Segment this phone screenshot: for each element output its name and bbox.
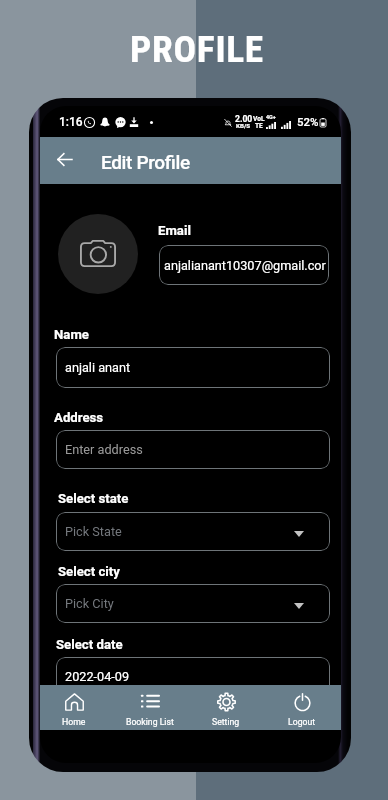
staticText: PROFILE xyxy=(130,27,264,71)
button[interactable]: Setting xyxy=(188,685,264,730)
staticText: Select date xyxy=(56,637,123,652)
staticText: Name xyxy=(54,327,89,342)
staticText: Edit Profile xyxy=(101,151,190,173)
staticText: Enter address xyxy=(65,442,143,457)
staticText: 4G+ xyxy=(266,114,276,120)
staticText: VoL xyxy=(253,115,265,123)
staticText: Pick City xyxy=(65,596,114,611)
staticText: Select city xyxy=(58,564,120,579)
staticText: Address xyxy=(54,410,104,425)
button[interactable]: Pick City xyxy=(56,584,330,623)
staticText: 2022-04-09 xyxy=(65,669,130,684)
button[interactable]: anjalianant10307@gmail.cor xyxy=(159,245,329,285)
button[interactable]: Enter address xyxy=(56,430,330,469)
staticText: 2.00 xyxy=(235,114,253,124)
staticText: Logout xyxy=(288,717,316,727)
staticText: 1:16 xyxy=(59,115,83,129)
button[interactable]: Pick State xyxy=(56,512,330,551)
button[interactable]: anjali anant xyxy=(56,347,330,388)
staticText: Setting xyxy=(212,717,240,727)
button[interactable]: Home xyxy=(40,685,112,730)
staticText: KB/S xyxy=(236,122,250,129)
button[interactable]: Logout xyxy=(264,685,340,730)
staticText: TE xyxy=(255,122,263,130)
button[interactable]: Change profile photo xyxy=(58,214,138,294)
staticText: Email xyxy=(158,223,191,238)
button[interactable]: Booking List xyxy=(112,685,188,730)
staticText: Booking List xyxy=(126,717,174,727)
staticText: Home xyxy=(62,717,86,727)
staticText: anjali anant xyxy=(65,360,131,375)
staticText: Select state xyxy=(58,491,129,506)
button[interactable]: Back xyxy=(44,141,84,181)
staticText: anjalianant10307@gmail.cor xyxy=(164,258,326,273)
staticText: 52% xyxy=(297,115,319,128)
staticText: Pick State xyxy=(65,524,122,539)
button[interactable]: 2022-04-09 xyxy=(56,657,330,696)
